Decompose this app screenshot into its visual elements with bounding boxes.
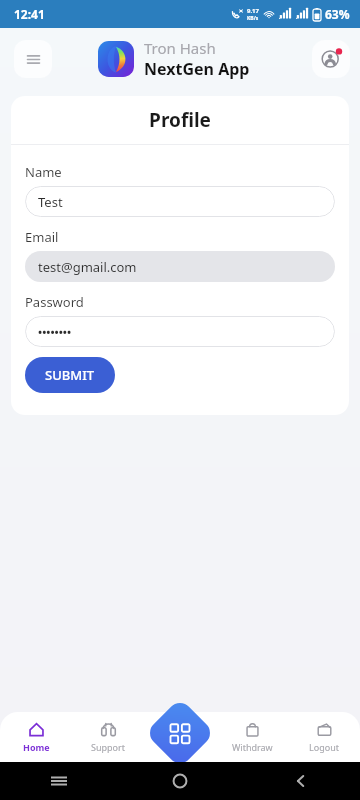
button[interactable]: ••••••••: [25, 316, 335, 347]
staticText: Name: [25, 163, 62, 181]
button[interactable]: Home: [0, 717, 72, 757]
staticText: Withdraw: [232, 741, 273, 753]
button[interactable]: Home: [165, 766, 195, 796]
button[interactable]: Test: [25, 186, 335, 217]
staticText: 12:41: [14, 6, 45, 22]
staticText: KB/s: [247, 15, 259, 22]
button[interactable]: Recents: [44, 766, 74, 796]
button[interactable]: Menu: [14, 40, 52, 78]
staticText: Logout: [309, 741, 339, 753]
staticText: NextGen App: [144, 58, 250, 80]
staticText: Profile: [149, 107, 211, 133]
staticText: Password: [25, 293, 84, 311]
button[interactable]: Profile: [312, 40, 350, 78]
button[interactable]: SUBMIT: [25, 357, 115, 393]
button[interactable]: Back: [286, 766, 316, 796]
button[interactable]: Logout: [288, 717, 360, 757]
staticText: 9.17: [247, 7, 259, 15]
button[interactable]: Dashboard: [145, 698, 215, 768]
button[interactable]: test@gmail.com: [25, 251, 335, 282]
staticText: SUBMIT: [45, 366, 95, 384]
staticText: Test: [38, 193, 63, 211]
staticText: Email: [25, 228, 59, 246]
button[interactable]: Support: [72, 717, 144, 757]
staticText: Home: [23, 741, 50, 753]
staticText: ••••••••: [38, 324, 72, 339]
staticText: 63%: [325, 6, 350, 22]
staticText: test@gmail.com: [38, 258, 137, 276]
staticText: Support: [91, 741, 125, 753]
button[interactable]: Withdraw: [216, 717, 288, 757]
staticText: Tron Hash: [144, 38, 216, 58]
